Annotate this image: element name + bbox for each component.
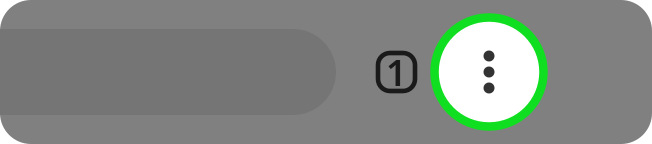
button[interactable]: Address [0, 29, 366, 115]
staticText: 1 [386, 48, 407, 96]
button[interactable]: More [430, 13, 548, 131]
button[interactable]: Tabs [378, 53, 415, 91]
